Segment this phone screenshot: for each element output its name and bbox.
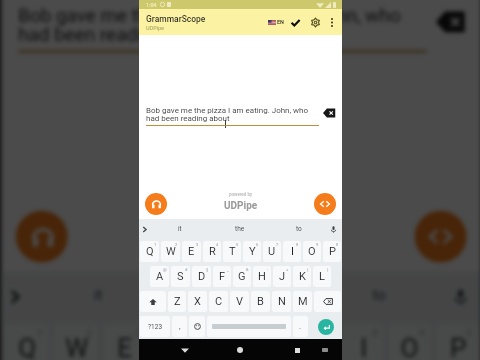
button[interactable]: R: [203, 241, 221, 262]
button[interactable]: Show code: [415, 211, 466, 263]
button[interactable]: Y: [243, 241, 261, 262]
button[interactable]: K: [293, 266, 311, 287]
staticText: 0: [336, 242, 339, 247]
button[interactable]: U: [263, 241, 281, 262]
button[interactable]: Show code: [314, 193, 336, 215]
button[interactable]: the: [169, 272, 308, 319]
button[interactable]: EN: [268, 15, 284, 29]
button[interactable]: O: [303, 241, 321, 262]
button[interactable]: Voice input: [328, 224, 339, 235]
staticText: L: [319, 270, 325, 283]
button[interactable]: More suggestions: [139, 224, 150, 235]
button[interactable]: Analyze: [286, 13, 305, 32]
button[interactable]: N: [272, 291, 291, 312]
button[interactable]: Clear text: [433, 8, 469, 36]
staticText: T: [214, 333, 230, 360]
button[interactable]: J: [273, 266, 291, 287]
staticText: EN: [277, 19, 284, 25]
staticText: E: [117, 333, 134, 360]
button[interactable]: R: [153, 324, 195, 360]
button[interactable]: M: [293, 291, 312, 312]
button[interactable]: F: [213, 266, 231, 287]
button[interactable]: it: [150, 219, 210, 239]
button[interactable]: Space: [207, 316, 291, 337]
staticText: powered by: [214, 208, 271, 220]
staticText: 9: [316, 242, 319, 247]
button[interactable]: C: [209, 291, 228, 312]
staticText: A: [156, 270, 164, 283]
button[interactable]: Recent apps: [287, 340, 307, 360]
button[interactable]: the: [210, 219, 269, 239]
button[interactable]: D: [192, 266, 211, 287]
button[interactable]: X: [188, 291, 207, 312]
button[interactable]: T: [200, 324, 242, 360]
staticText: ,: [179, 322, 181, 331]
button[interactable]: More options: [325, 15, 339, 29]
button[interactable]: L: [313, 266, 331, 287]
button[interactable]: it: [28, 272, 169, 319]
button[interactable]: Backspace: [314, 291, 341, 312]
button[interactable]: P: [323, 241, 341, 262]
button[interactable]: O: [389, 324, 431, 360]
button[interactable]: B: [251, 291, 270, 312]
staticText: O: [308, 245, 316, 258]
button[interactable]: U: [294, 324, 337, 360]
button[interactable]: G: [233, 266, 251, 287]
staticText: @: [163, 267, 167, 272]
button[interactable]: S: [171, 266, 190, 287]
button[interactable]: Home: [230, 340, 250, 360]
button[interactable]: Settings: [306, 13, 325, 32]
staticText: G: [238, 270, 246, 283]
staticText: T: [229, 245, 236, 258]
button[interactable]: Y: [247, 324, 290, 360]
staticText: W: [166, 245, 176, 258]
staticText: #: [185, 267, 188, 272]
staticText: the: [235, 225, 245, 233]
staticText: I: [291, 245, 294, 258]
button[interactable]: Switch keyboard: [316, 341, 334, 359]
staticText: M: [298, 295, 308, 308]
button[interactable]: More suggestions: [2, 284, 28, 310]
button[interactable]: Enter: [318, 319, 334, 335]
button[interactable]: ,: [172, 316, 187, 337]
button[interactable]: Voice input: [448, 284, 474, 310]
button[interactable]: Shift: [140, 291, 166, 312]
staticText: 7: [325, 326, 332, 338]
button[interactable]: Z: [168, 291, 186, 312]
button[interactable]: to: [269, 219, 328, 239]
button[interactable]: Listen: [16, 211, 68, 263]
button[interactable]: E: [103, 324, 148, 360]
button[interactable]: E: [182, 241, 201, 262]
staticText: UDPipe: [224, 200, 258, 212]
button[interactable]: H: [253, 266, 271, 287]
button[interactable]: Q: [4, 324, 49, 360]
staticText: 1: [154, 242, 157, 247]
button[interactable]: Emoji: [189, 316, 205, 337]
staticText: N: [278, 295, 286, 308]
button[interactable]: to: [308, 272, 448, 319]
button[interactable]: A: [150, 266, 169, 287]
button[interactable]: V: [230, 291, 249, 312]
staticText: P: [450, 333, 466, 360]
staticText: O: [400, 333, 419, 360]
button[interactable]: ?123: [140, 316, 170, 337]
button[interactable]: I: [341, 324, 384, 360]
staticText: powered by: [229, 192, 253, 197]
staticText: (: [307, 267, 309, 272]
button[interactable]: W: [54, 324, 98, 360]
staticText: 2: [175, 242, 178, 247]
button[interactable]: Back: [175, 340, 195, 360]
button[interactable]: Listen: [145, 193, 167, 215]
staticText: U: [268, 245, 276, 258]
button[interactable]: T: [223, 241, 241, 262]
staticText: ?123: [148, 323, 163, 331]
button[interactable]: I: [283, 241, 301, 262]
button[interactable]: Q: [140, 241, 159, 262]
button[interactable]: W: [161, 241, 180, 262]
button[interactable]: P: [436, 324, 478, 360]
button[interactable]: Clear text: [322, 107, 337, 119]
staticText: it: [94, 286, 103, 305]
button[interactable]: .: [293, 316, 308, 337]
